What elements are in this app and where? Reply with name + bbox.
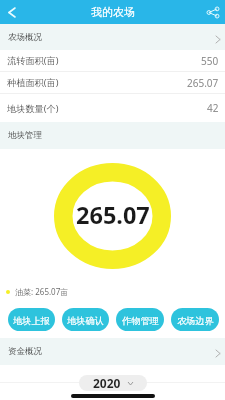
staticText: 资金概况 bbox=[8, 346, 42, 357]
button[interactable]: 农场边界 bbox=[171, 308, 219, 331]
staticText: 作物管理 bbox=[122, 315, 159, 327]
button[interactable]: 地块确认 bbox=[62, 308, 109, 331]
button[interactable]: 2020 bbox=[79, 375, 147, 391]
staticText: 2020 bbox=[93, 375, 121, 391]
staticText: 我的农场 bbox=[91, 5, 135, 19]
button[interactable]: 资金概况 bbox=[0, 338, 225, 365]
staticText: 地块数量(个) bbox=[7, 102, 59, 115]
button[interactable]: 种植面积(亩) bbox=[0, 72, 225, 93]
staticText: 550 bbox=[201, 54, 219, 68]
staticText: 地块管理 bbox=[8, 130, 42, 141]
button[interactable]: 作物管理 bbox=[116, 308, 164, 331]
staticText: 地块确认 bbox=[67, 315, 104, 327]
staticText: 265.07 bbox=[187, 76, 219, 90]
button[interactable]: 流转面积(亩) bbox=[0, 50, 225, 71]
button[interactable]: Share bbox=[201, 0, 225, 24]
button[interactable]: 农场概况 bbox=[0, 24, 225, 50]
button[interactable]: 地块数量(个) bbox=[0, 94, 225, 122]
staticText: 油菜: 265.07亩 bbox=[15, 286, 69, 297]
button[interactable]: 地块上报 bbox=[8, 308, 55, 331]
staticText: 种植面积(亩) bbox=[7, 76, 59, 89]
button[interactable]: 地块管理 bbox=[0, 122, 225, 149]
staticText: 农场边界 bbox=[177, 315, 214, 327]
staticText: 流转面积(亩) bbox=[7, 54, 59, 67]
staticText: 42 bbox=[207, 101, 219, 115]
staticText: 农场概况 bbox=[8, 32, 42, 43]
staticText: 265.07 bbox=[76, 199, 150, 231]
button[interactable]: Back bbox=[0, 0, 24, 24]
staticText: 地块上报 bbox=[13, 315, 50, 327]
